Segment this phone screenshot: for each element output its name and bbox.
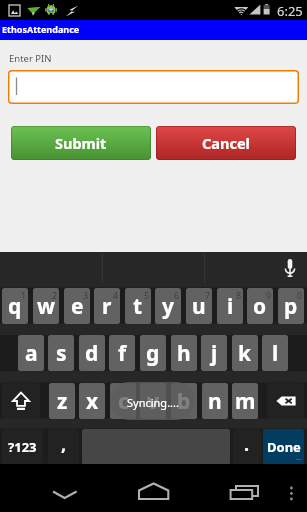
staticText: Cancel bbox=[202, 133, 250, 153]
button[interactable]: n bbox=[202, 383, 228, 419]
button[interactable]: c bbox=[110, 383, 136, 419]
staticText: Syncing.... bbox=[127, 395, 179, 410]
staticText: o bbox=[253, 292, 267, 321]
button[interactable]: w bbox=[33, 288, 59, 324]
staticText: p bbox=[284, 292, 298, 321]
staticText: g bbox=[146, 339, 160, 368]
staticText: 6 bbox=[174, 289, 180, 301]
button[interactable]: t bbox=[125, 288, 151, 324]
staticText: ... bbox=[296, 453, 302, 463]
button[interactable]: a bbox=[18, 335, 44, 371]
staticText: l bbox=[272, 339, 279, 368]
staticText: 2 bbox=[52, 289, 58, 301]
button[interactable]: e bbox=[64, 288, 90, 324]
button[interactable]: Home bbox=[134, 480, 174, 508]
button[interactable]: x bbox=[79, 383, 105, 419]
button[interactable]: r bbox=[94, 288, 120, 324]
staticText: , bbox=[61, 432, 67, 457]
staticText: . bbox=[244, 432, 250, 457]
button[interactable]: h bbox=[171, 335, 197, 371]
staticText: h bbox=[177, 339, 191, 368]
staticText: 4 bbox=[113, 289, 119, 301]
staticText: 9 bbox=[266, 289, 272, 301]
staticText: f bbox=[118, 339, 127, 368]
staticText: 0 bbox=[297, 289, 303, 301]
staticText: w bbox=[37, 292, 55, 321]
button[interactable]: PIN input field bbox=[8, 70, 299, 104]
button[interactable]: m bbox=[232, 383, 258, 419]
staticText: b bbox=[177, 387, 191, 416]
button[interactable]: s bbox=[48, 335, 74, 371]
staticText: 3 bbox=[83, 289, 89, 301]
staticText: j bbox=[211, 339, 218, 368]
staticText: ?123 bbox=[8, 438, 37, 456]
button[interactable]: Done bbox=[263, 429, 304, 465]
staticText: a bbox=[25, 339, 38, 368]
button[interactable]: g bbox=[140, 335, 166, 371]
button[interactable]: period bbox=[233, 429, 261, 465]
button[interactable]: comma bbox=[48, 429, 79, 465]
button[interactable]: q bbox=[2, 288, 28, 324]
staticText: t bbox=[133, 292, 143, 321]
button[interactable]: o bbox=[247, 288, 273, 324]
button[interactable]: Shift bbox=[2, 383, 40, 419]
staticText: k bbox=[238, 339, 252, 368]
button[interactable]: z bbox=[49, 383, 75, 419]
staticText: m bbox=[235, 387, 256, 416]
button[interactable]: Backspace bbox=[267, 383, 304, 419]
staticText: q bbox=[8, 292, 22, 321]
button[interactable]: l bbox=[262, 335, 288, 371]
button[interactable]: d bbox=[79, 335, 105, 371]
button[interactable]: j bbox=[201, 335, 227, 371]
staticText: 1 bbox=[21, 289, 27, 301]
button[interactable]: f bbox=[109, 335, 135, 371]
button[interactable]: p bbox=[278, 288, 304, 324]
staticText: 8 bbox=[236, 289, 242, 301]
button[interactable]: Space bbox=[82, 429, 230, 465]
button[interactable]: ?123 bbox=[2, 429, 43, 465]
button[interactable]: v bbox=[140, 383, 166, 419]
staticText: e bbox=[71, 292, 84, 321]
staticText: n bbox=[208, 387, 222, 416]
button[interactable]: Back bbox=[44, 476, 84, 508]
other: More options bbox=[286, 482, 298, 498]
staticText: 5 bbox=[144, 289, 150, 301]
button[interactable]: y bbox=[155, 288, 181, 324]
button[interactable]: Recent apps bbox=[225, 480, 265, 508]
staticText: 6:25 bbox=[277, 2, 303, 20]
staticText: z bbox=[57, 387, 68, 416]
button[interactable]: k bbox=[232, 335, 258, 371]
button[interactable]: Voice input bbox=[283, 257, 299, 279]
staticText: c bbox=[118, 387, 129, 416]
staticText: Submit bbox=[55, 133, 107, 153]
button[interactable]: i bbox=[217, 288, 243, 324]
staticText: 7 bbox=[205, 289, 211, 301]
staticText: i bbox=[227, 292, 234, 321]
staticText: Enter PIN bbox=[9, 52, 52, 65]
button[interactable]: u bbox=[186, 288, 212, 324]
button[interactable]: b bbox=[171, 383, 197, 419]
staticText: Done bbox=[267, 438, 301, 456]
staticText: y bbox=[162, 292, 174, 321]
staticText: EthosAttendance bbox=[2, 23, 80, 35]
button[interactable]: Cancel bbox=[156, 126, 296, 160]
staticText: x bbox=[86, 387, 99, 416]
staticText: r bbox=[102, 292, 112, 321]
staticText: v bbox=[147, 387, 159, 416]
staticText: s bbox=[56, 339, 67, 368]
staticText: d bbox=[85, 339, 99, 368]
button[interactable]: Submit bbox=[11, 126, 151, 160]
staticText: u bbox=[192, 292, 206, 321]
